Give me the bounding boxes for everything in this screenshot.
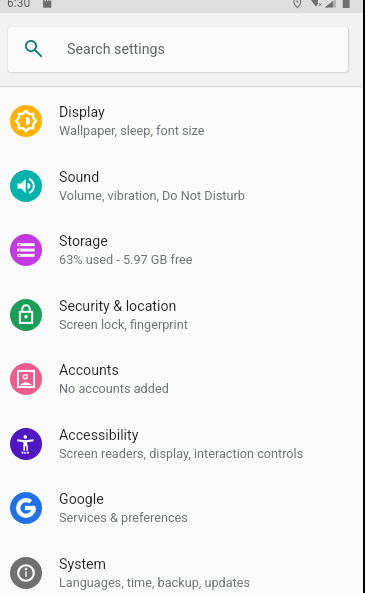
button[interactable]: Security & location [0, 282, 363, 347]
button[interactable]: Accessibility [0, 411, 363, 476]
staticText: Accessibility [59, 427, 139, 444]
staticText: No accounts added [59, 381, 169, 396]
button[interactable]: Storage [0, 217, 363, 282]
button[interactable]: Sound [0, 153, 363, 218]
staticText: Screen readers, display, interaction con… [59, 446, 304, 461]
staticText: Screen lock, fingerprint [59, 317, 188, 332]
staticText: Volume, vibration, Do Not Disturb [59, 188, 245, 203]
staticText: Google [59, 491, 104, 508]
other: Search [23, 38, 45, 60]
button[interactable]: Search [8, 27, 348, 72]
button[interactable]: Google [0, 475, 363, 540]
button[interactable]: System [0, 540, 363, 593]
staticText: Languages, time, backup, updates [59, 575, 251, 590]
staticText: Accounts [59, 362, 119, 379]
staticText: Storage [59, 233, 108, 250]
staticText: Security & location [59, 298, 177, 315]
staticText: 6:30 [7, 0, 31, 9]
staticText: Display [59, 104, 105, 121]
staticText: Sound [59, 169, 100, 186]
staticText: Wallpaper, sleep, font size [59, 123, 205, 138]
staticText: 63% used - 5.97 GB free [59, 252, 193, 267]
staticText: System [59, 556, 107, 573]
staticText: Services & preferences [59, 510, 188, 525]
button[interactable]: Accounts [0, 346, 363, 411]
button[interactable]: Display [0, 88, 363, 153]
staticText: Search settings [67, 41, 165, 58]
